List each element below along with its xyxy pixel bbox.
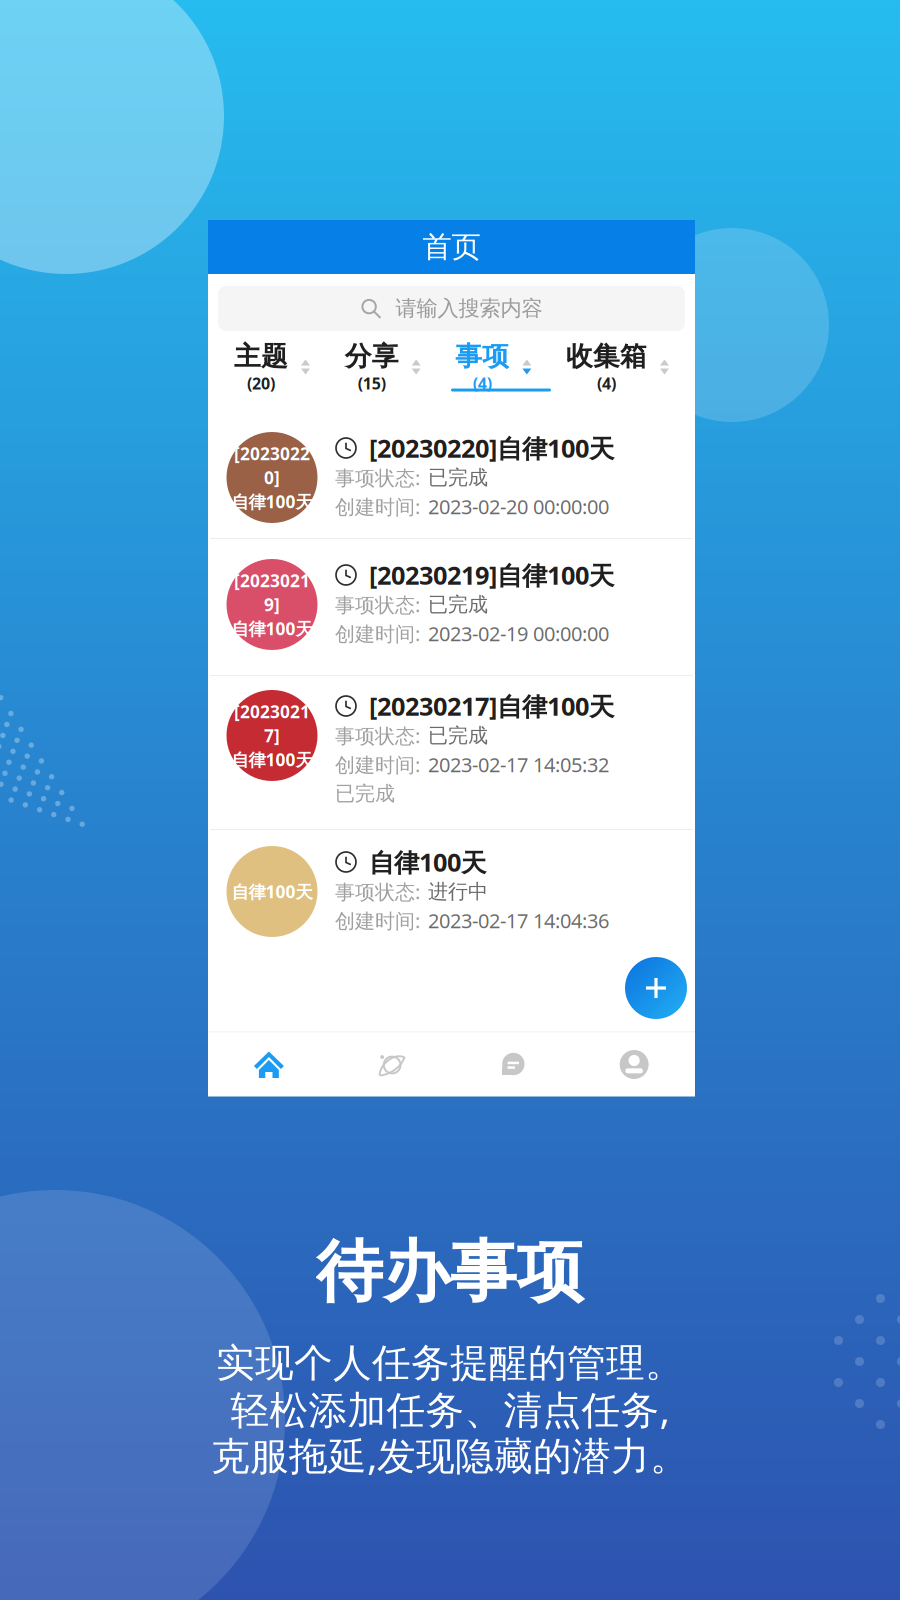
staticText: 创建时间: [335, 907, 420, 934]
staticText: 自律100天 [369, 845, 486, 879]
staticText: 2023-02-17 14:05:32 [428, 751, 609, 778]
staticText: 自律100天 [231, 490, 312, 513]
staticText: 已完成 [428, 723, 488, 748]
staticText: [2023021 [234, 569, 310, 592]
staticText: 请输入搜索内容 [395, 295, 542, 322]
staticText: 已完成 [428, 465, 488, 490]
staticText: (15) [358, 373, 386, 394]
staticText: 创建时间: [335, 493, 420, 520]
staticText: 0] [264, 466, 280, 489]
staticText: 事项状态: [335, 722, 420, 749]
staticText: 9] [264, 593, 280, 616]
button[interactable]: [2023021 [208, 676, 695, 829]
staticText: [2023021 [234, 700, 310, 723]
staticText: 2023-02-19 00:00:00 [428, 620, 609, 647]
button[interactable]: [2023022 [208, 416, 695, 538]
staticText: 收集箱 [566, 340, 647, 373]
staticText: 轻松添加任务、清点任务, [230, 1383, 669, 1435]
staticText: 首页 [422, 229, 480, 265]
button[interactable]: 事项 [455, 336, 531, 398]
button[interactable]: Messages [451, 1049, 573, 1079]
staticText: 事项状态: [335, 591, 420, 618]
staticText: 实现个人任务提醒的管理。 [216, 1339, 684, 1387]
staticText: 创建时间: [335, 751, 420, 778]
staticText: (4) [597, 373, 616, 394]
staticText: 事项 [455, 340, 509, 373]
staticText: 已完成 [428, 592, 488, 617]
staticText: 自律100天 [231, 617, 312, 640]
button[interactable]: Add task [625, 957, 687, 1019]
staticText: 2023-02-20 00:00:00 [428, 493, 609, 520]
staticText: [20230217]自律100天 [369, 689, 614, 723]
staticText: 已完成 [335, 781, 395, 806]
button[interactable]: 分享 [345, 336, 421, 398]
button[interactable]: 自律100天 [208, 830, 695, 959]
staticText: 进行中 [428, 879, 488, 904]
staticText: 分享 [345, 340, 399, 373]
staticText: 2023-02-17 14:04:36 [428, 907, 609, 934]
button[interactable]: [2023021 [208, 539, 695, 675]
staticText: 待办事项 [316, 1231, 584, 1313]
staticText: (20) [247, 373, 275, 394]
button[interactable]: Profile [573, 1049, 695, 1079]
staticText: 克服拖延,发现隐藏的潜力。 [211, 1429, 689, 1481]
staticText: 创建时间: [335, 620, 420, 647]
button[interactable]: 主题 [234, 336, 310, 398]
button[interactable]: Home [208, 1049, 330, 1079]
staticText: [20230219]自律100天 [369, 558, 614, 592]
staticText: 事项状态: [335, 464, 420, 491]
staticText: 主题 [234, 340, 288, 373]
staticText: (4) [473, 373, 492, 394]
staticText: [2023022 [234, 442, 310, 465]
staticText: 事项状态: [335, 878, 420, 905]
button[interactable]: 收集箱 [566, 336, 669, 398]
staticText: 7] [264, 724, 280, 747]
staticText: 自律100天 [231, 748, 312, 771]
staticText: [20230220]自律100天 [369, 431, 614, 465]
button[interactable]: Discover [330, 1049, 452, 1079]
staticText: 自律100天 [231, 880, 312, 903]
